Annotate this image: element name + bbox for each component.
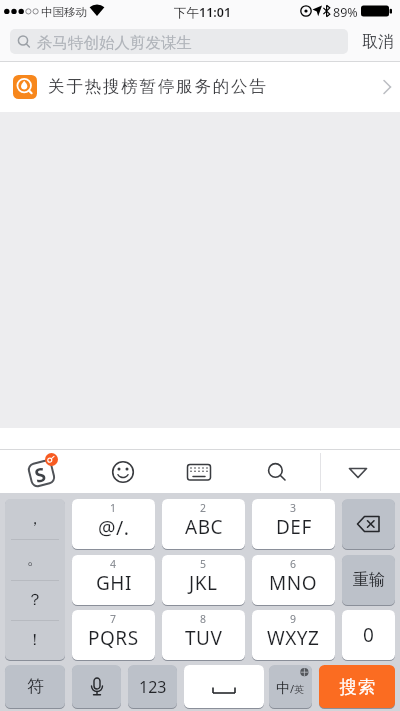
button[interactable]: 重输	[342, 555, 395, 605]
button[interactable]: S	[26, 456, 60, 490]
staticText: JKL	[189, 570, 218, 596]
button[interactable]: 2	[162, 499, 245, 549]
staticText: DEF	[276, 514, 312, 540]
button[interactable]: 4	[72, 555, 155, 605]
button[interactable]: ？	[5, 580, 65, 620]
staticText: 4	[110, 557, 117, 571]
button[interactable]: 。	[5, 539, 65, 579]
button[interactable]: 9	[252, 610, 335, 660]
staticText: 关于热搜榜暂停服务的公告	[48, 76, 268, 97]
staticText: ！	[27, 630, 43, 650]
staticText: 搜索	[339, 676, 376, 698]
button[interactable]: 6	[252, 555, 335, 605]
button[interactable]	[101, 451, 145, 493]
staticText: S	[32, 461, 49, 489]
staticText: 2	[200, 501, 207, 515]
staticText: 123	[139, 676, 167, 698]
staticText: ？	[27, 590, 43, 610]
button[interactable]: 取消	[356, 22, 400, 62]
button[interactable]: 0	[342, 610, 395, 660]
staticText: 中/英	[276, 680, 305, 698]
button[interactable]	[255, 451, 299, 493]
staticText: 符	[27, 676, 44, 697]
button[interactable]	[342, 499, 395, 549]
staticText: TUV	[185, 625, 223, 651]
button[interactable]: 1	[72, 499, 155, 549]
button[interactable]	[72, 665, 121, 708]
staticText: ，	[27, 509, 43, 529]
staticText: 0	[363, 622, 374, 648]
staticText: 8	[200, 612, 207, 626]
staticText: 中国移动	[41, 5, 87, 19]
staticText: 重输	[353, 570, 385, 590]
button[interactable]: 搜索	[319, 665, 395, 708]
staticText: PQRS	[88, 625, 139, 651]
button[interactable]: 7	[72, 610, 155, 660]
button[interactable]	[184, 665, 264, 708]
button[interactable]: 123	[128, 665, 177, 708]
button[interactable]: ，	[5, 499, 65, 539]
staticText: 9	[290, 612, 297, 626]
button[interactable]	[336, 451, 380, 493]
staticText: @/.	[98, 514, 130, 541]
staticText: MNO	[269, 570, 318, 596]
staticText: 取消	[362, 32, 394, 52]
staticText: 5	[200, 557, 207, 571]
button[interactable]: 中/英	[269, 665, 312, 708]
staticText: ABC	[185, 514, 223, 540]
staticText: 下午11:01	[174, 4, 232, 21]
button[interactable]: 8	[162, 610, 245, 660]
staticText: 杀马特创始人剪发谋生	[37, 33, 192, 53]
staticText: 。	[27, 549, 43, 569]
button[interactable]: 5	[162, 555, 245, 605]
button[interactable]: 3	[252, 499, 335, 549]
staticText: GHI	[96, 570, 132, 596]
button[interactable]: 关于热搜榜暂停服务的公告	[0, 62, 400, 112]
button[interactable]: 符	[5, 665, 65, 708]
staticText: 7	[110, 612, 117, 626]
staticText: 1	[110, 501, 117, 515]
button[interactable]	[177, 451, 221, 493]
staticText: 89%	[333, 4, 358, 21]
button[interactable]: ！	[5, 620, 65, 660]
staticText: 3	[290, 501, 297, 515]
staticText: WXYZ	[267, 625, 320, 651]
button[interactable]: 杀马特创始人剪发谋生	[10, 29, 348, 54]
staticText: 6	[290, 557, 297, 571]
